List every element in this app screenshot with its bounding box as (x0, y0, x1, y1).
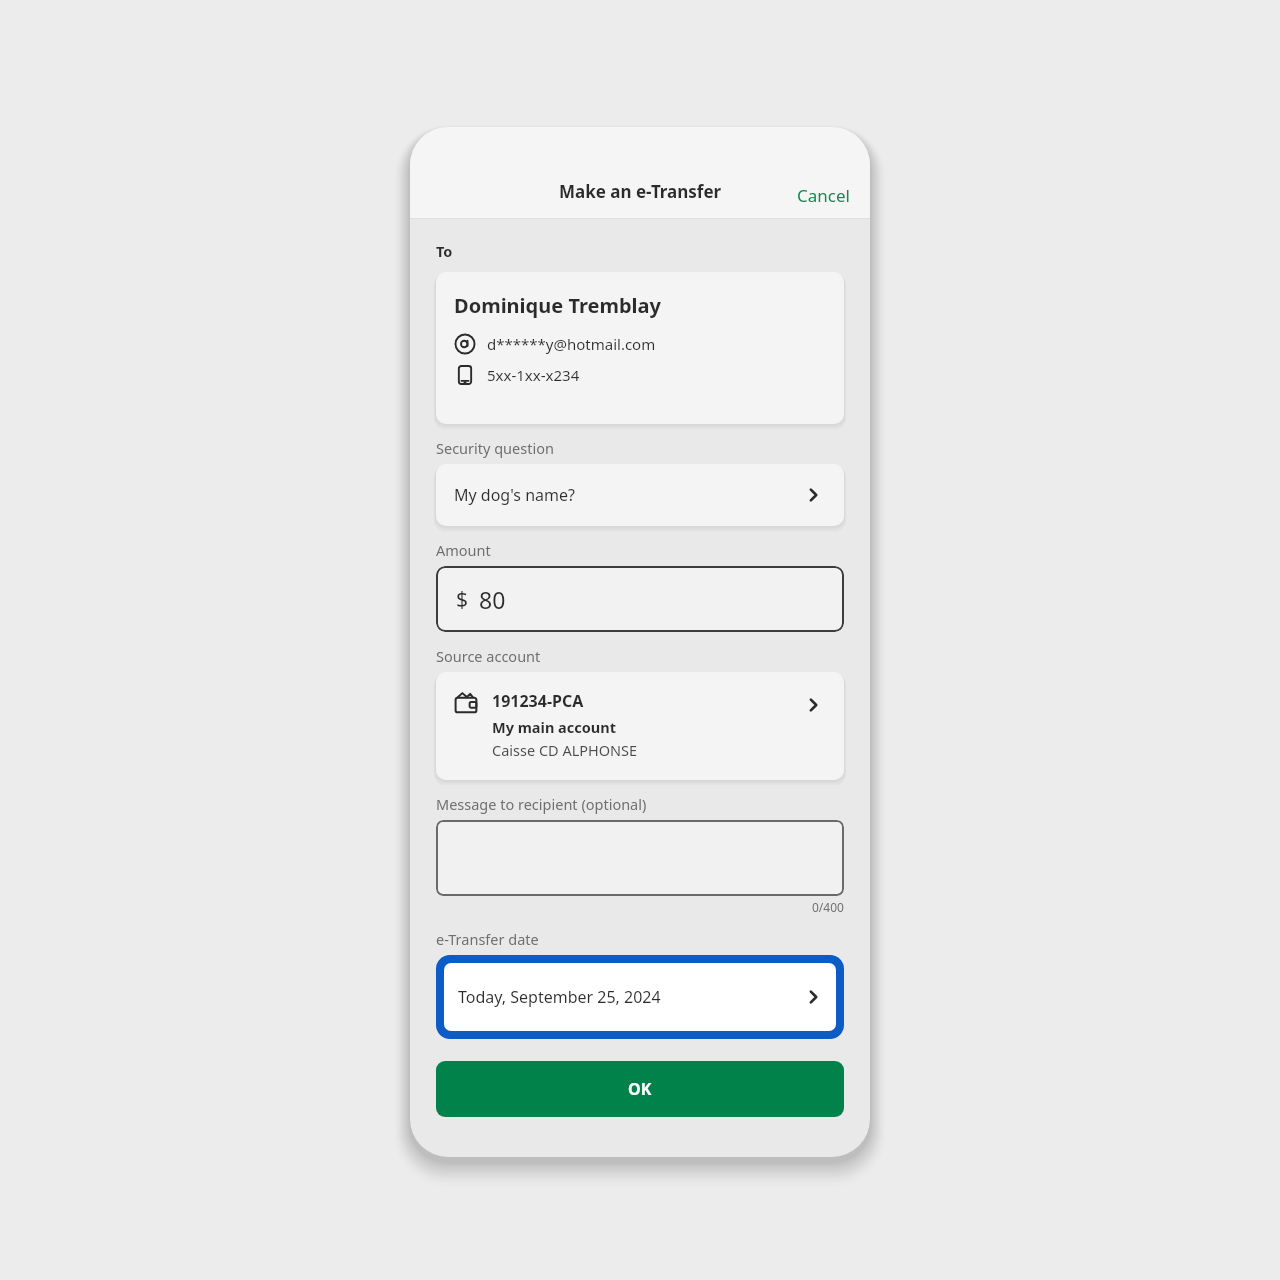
other: Change e-Transfer date (804, 988, 822, 1006)
staticText: Make an e-Transfer (559, 180, 722, 203)
other: Change source account (804, 696, 822, 714)
staticText: Security question (436, 438, 554, 458)
button[interactable]: My dog's name? (436, 464, 844, 526)
staticText: My main account (492, 717, 616, 737)
staticText: 0/400 (812, 899, 844, 915)
staticText: Caisse CD ALPHONSE (492, 740, 638, 760)
staticText: 5xx-1xx-x234 (487, 365, 580, 385)
button[interactable]: $ (436, 566, 844, 632)
button[interactable]: Cancel (787, 176, 860, 215)
staticText: Amount (436, 540, 491, 560)
staticText: Source account (436, 646, 541, 666)
staticText: To (436, 241, 453, 261)
staticText: My dog's name? (454, 484, 575, 506)
button[interactable]: Today, September 25, 2024 (436, 955, 844, 1039)
staticText: Message to recipient (optional) (436, 794, 647, 814)
staticText: e-Transfer date (436, 929, 539, 949)
button[interactable] (436, 820, 844, 896)
button[interactable]: 191234-PCA (436, 672, 844, 780)
staticText: Dominique Tremblay (454, 292, 661, 319)
staticText: Today, September 25, 2024 (458, 986, 661, 1008)
staticText: $ (456, 585, 469, 614)
staticText: d******y@hotmail.com (487, 334, 656, 354)
staticText: Cancel (797, 184, 850, 207)
button[interactable]: OK (436, 1061, 844, 1117)
staticText: 191234-PCA (492, 690, 584, 712)
staticText: OK (628, 1078, 652, 1100)
other: Security question (804, 486, 822, 504)
staticText: 80 (479, 584, 506, 615)
